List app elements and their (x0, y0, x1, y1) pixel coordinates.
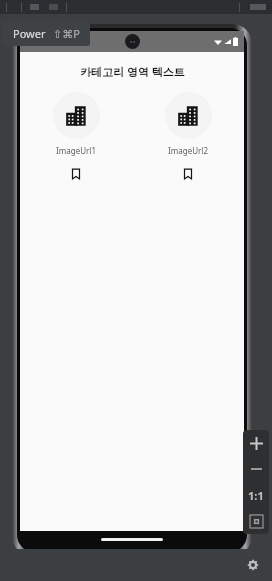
staticText: Power (13, 26, 46, 41)
button[interactable]: ImageUrl1 (20, 92, 132, 184)
button[interactable]: Zoom in (243, 430, 269, 456)
button[interactable]: Settings (243, 555, 263, 575)
staticText: ⇧⌘P (53, 26, 80, 41)
button[interactable]: Bookmark ImageUrl1 (66, 164, 86, 184)
staticText: ImageUrl2 (168, 145, 208, 156)
staticText: ImageUrl1 (56, 145, 96, 156)
button[interactable]: Fit to screen (243, 508, 269, 534)
button[interactable]: Bookmark ImageUrl2 (178, 164, 198, 184)
button[interactable]: ImageUrl2 (132, 92, 244, 184)
button[interactable]: Power (3, 21, 90, 46)
button[interactable]: 1:1 (243, 482, 269, 508)
button[interactable]: Zoom out (243, 456, 269, 482)
staticText: 1:1 (248, 488, 264, 503)
staticText: 카테고리 영역 텍스트 (80, 64, 185, 79)
